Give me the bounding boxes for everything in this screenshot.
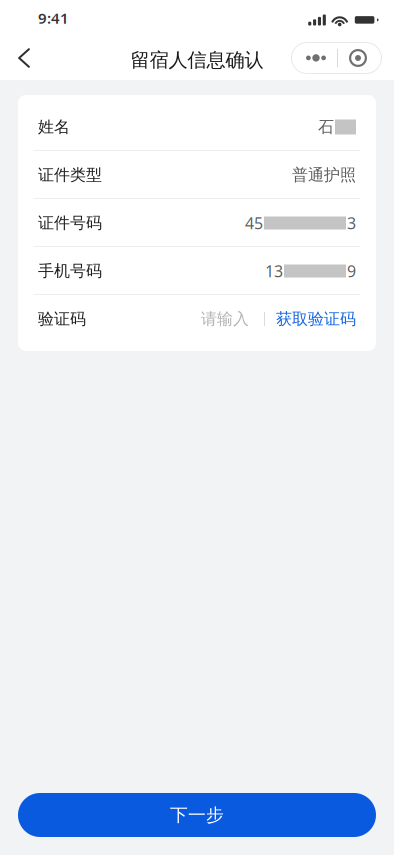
staticText: 留宿人信息确认: [130, 48, 263, 72]
staticText: 证件类型: [38, 165, 102, 185]
staticText: 验证码: [38, 309, 86, 329]
button[interactable]: 获取验证码: [276, 309, 356, 329]
staticText: 获取验证码: [276, 309, 356, 329]
staticText: 9:41: [38, 8, 69, 28]
staticText: 9: [347, 260, 356, 282]
staticText: 证件号码: [38, 213, 102, 233]
staticText: 普通护照: [292, 165, 356, 185]
staticText: 石: [318, 117, 334, 137]
button[interactable]: More: [291, 42, 382, 74]
staticText: 手机号码: [38, 261, 102, 281]
staticText: 请输入: [201, 309, 249, 329]
staticText: 45: [245, 212, 263, 234]
staticText: 下一步: [170, 804, 224, 826]
button[interactable]: 下一步: [18, 793, 376, 837]
button[interactable]: Back: [0, 36, 48, 80]
staticText: 姓名: [38, 117, 70, 137]
staticText: 3: [347, 212, 356, 234]
staticText: 13: [265, 260, 283, 282]
